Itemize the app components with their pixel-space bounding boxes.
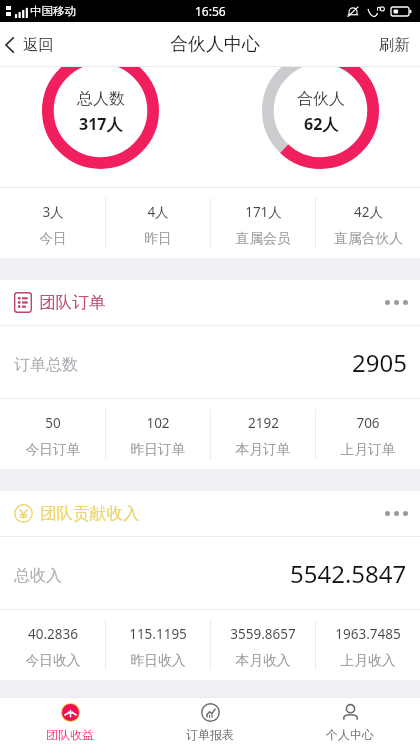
staticText: 订单总数 xyxy=(14,355,78,375)
staticText: 直属会员 xyxy=(235,230,291,247)
button[interactable]: 团队收益 xyxy=(0,698,140,747)
staticText: 订单报表 xyxy=(186,727,234,742)
staticText: 上月收入 xyxy=(340,652,396,669)
staticText: 3559.8657 xyxy=(230,625,296,643)
button[interactable]: 返回 xyxy=(0,22,64,67)
staticText: 706 xyxy=(356,414,380,432)
staticText: 总人数 xyxy=(77,89,125,109)
staticText: 2905 xyxy=(352,346,407,379)
staticText: 40.2836 xyxy=(28,625,78,643)
staticText: 昨日订单 xyxy=(130,441,186,458)
staticText: 返回 xyxy=(23,35,54,55)
staticText: 50 xyxy=(45,414,61,432)
staticText: 刷新 xyxy=(379,35,410,55)
staticText: 本月订单 xyxy=(235,441,291,458)
staticText: 102 xyxy=(146,414,170,432)
staticText: 个人中心 xyxy=(326,727,374,742)
staticText: 昨日收入 xyxy=(130,652,186,669)
button[interactable]: More options xyxy=(383,501,410,526)
staticText: 今日订单 xyxy=(25,441,81,458)
staticText: 上月订单 xyxy=(340,441,396,458)
staticText: 2192 xyxy=(248,414,279,432)
staticText: 16:56 xyxy=(195,3,226,19)
staticText: 5542.5847 xyxy=(290,557,407,590)
staticText: 合伙人中心 xyxy=(170,33,260,56)
staticText: 团队贡献收入 xyxy=(40,503,140,524)
staticText: 1963.7485 xyxy=(335,625,401,643)
staticText: 62人 xyxy=(304,113,339,135)
button[interactable]: 刷新 xyxy=(366,22,420,67)
staticText: 3人 xyxy=(42,203,64,221)
staticText: 4人 xyxy=(147,203,169,221)
staticText: 171人 xyxy=(245,203,282,221)
staticText: 今日收入 xyxy=(25,652,81,669)
staticText: 今日 xyxy=(39,230,67,247)
staticText: 昨日 xyxy=(144,230,172,247)
staticText: 本月收入 xyxy=(235,652,291,669)
staticText: 115.1195 xyxy=(129,625,187,643)
staticText: 团队收益 xyxy=(46,727,94,742)
button[interactable]: 个人中心 xyxy=(280,698,420,747)
staticText: 直属合伙人 xyxy=(334,230,403,247)
button[interactable]: More options xyxy=(383,290,410,315)
staticText: 总收入 xyxy=(14,566,62,586)
staticText: 中国移动 xyxy=(30,4,76,18)
staticText: 团队订单 xyxy=(39,292,106,313)
staticText: 317人 xyxy=(79,113,123,135)
staticText: 42人 xyxy=(354,203,383,221)
button[interactable]: 订单报表 xyxy=(140,698,280,747)
staticText: 合伙人 xyxy=(297,89,345,109)
